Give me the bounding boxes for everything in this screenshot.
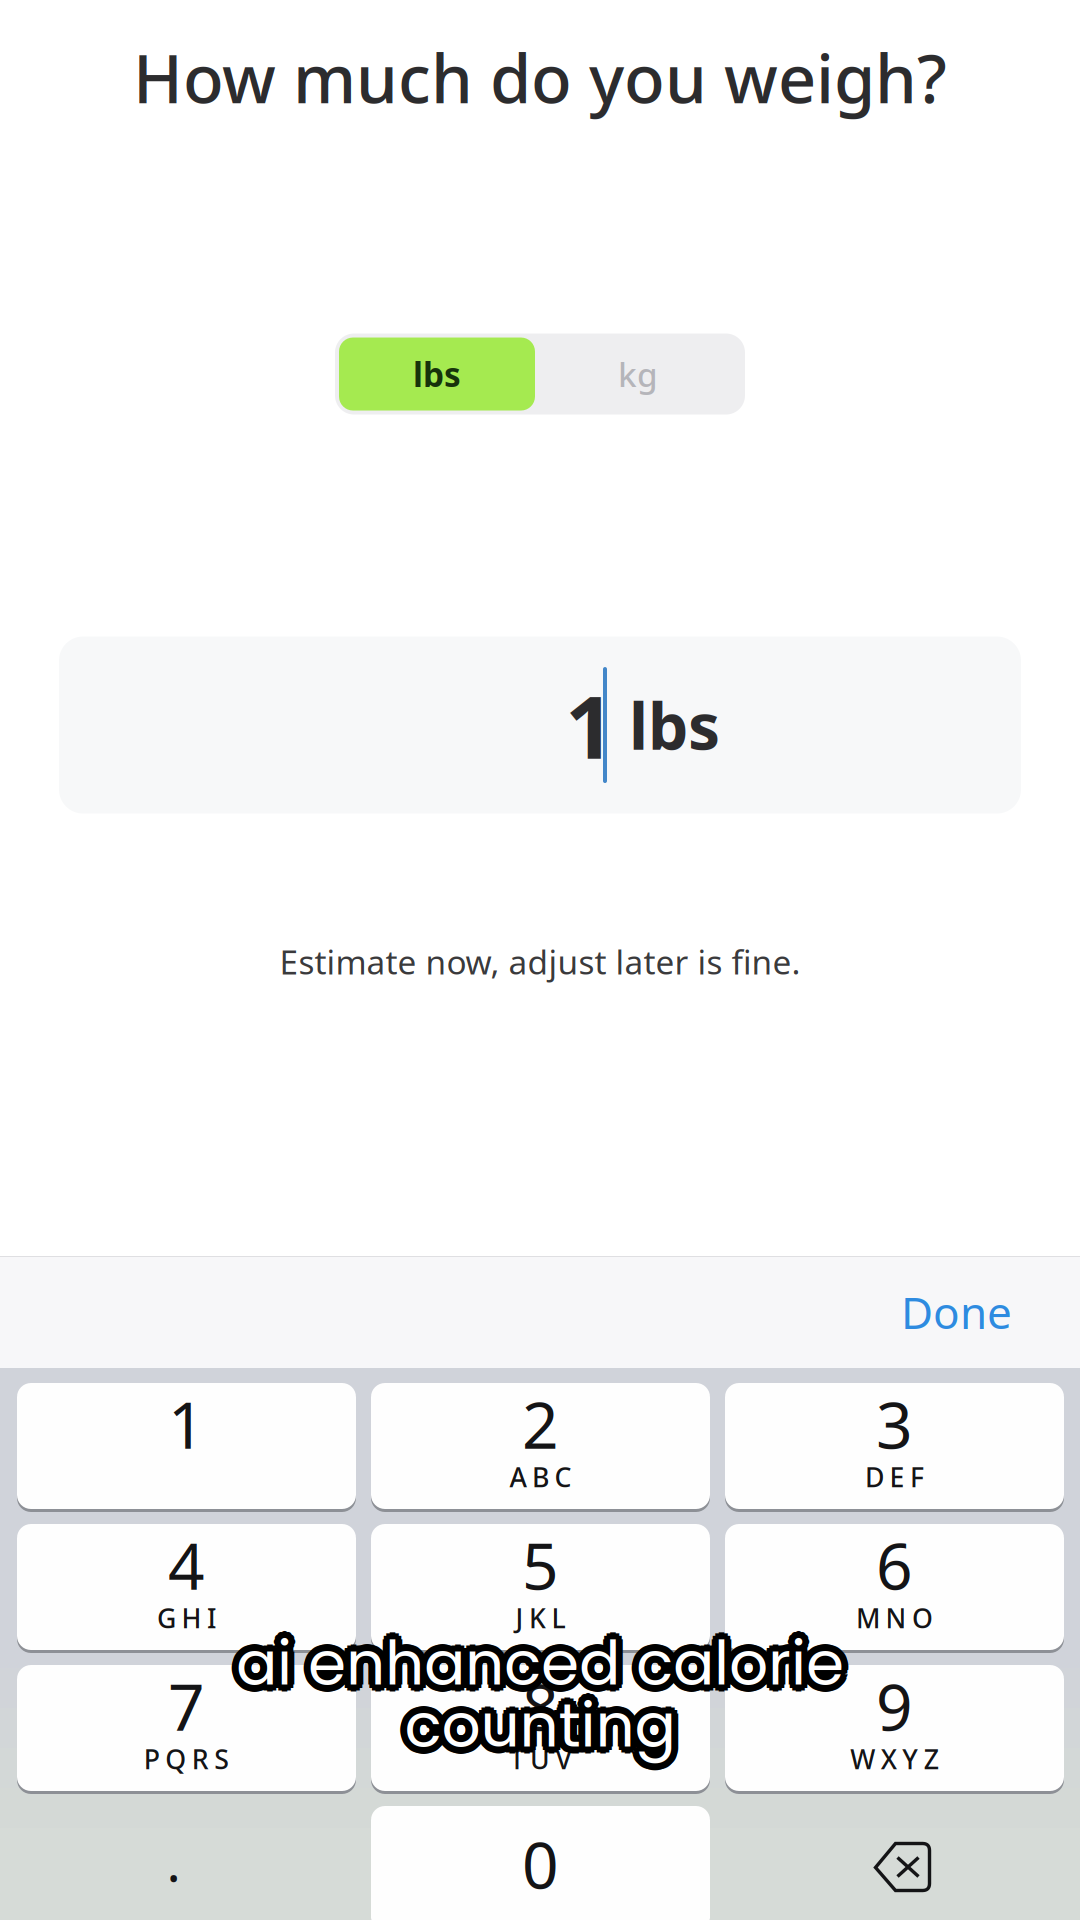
staticText: ai enhanced calorie bbox=[239, 1626, 847, 1712]
staticText: ai enhanced calorie bbox=[232, 1620, 840, 1706]
staticText: lbs bbox=[413, 352, 461, 396]
staticText: 7 bbox=[168, 1663, 205, 1748]
staticText: ai enhanced calorie bbox=[236, 1624, 844, 1709]
staticText: counting bbox=[398, 1679, 669, 1764]
button[interactable]: Decimal point bbox=[17, 1806, 356, 1920]
staticText: lbs bbox=[629, 682, 720, 767]
staticText: kg bbox=[618, 352, 658, 396]
staticText: ai enhanced calorie bbox=[236, 1620, 844, 1706]
staticText: DEF bbox=[865, 1459, 924, 1495]
button[interactable]: 7 bbox=[17, 1665, 356, 1791]
staticText: counting bbox=[411, 1679, 682, 1764]
staticText: counting bbox=[404, 1679, 675, 1764]
staticText: ai enhanced calorie bbox=[229, 1620, 837, 1706]
staticText: counting bbox=[406, 1685, 677, 1771]
staticText: counting bbox=[407, 1684, 678, 1770]
staticText: ai enhanced calorie bbox=[243, 1620, 851, 1706]
button[interactable]: 1 bbox=[17, 1383, 356, 1509]
staticText: 2 bbox=[522, 1381, 559, 1466]
staticText: ai enhanced calorie bbox=[238, 1623, 846, 1709]
staticText: counting bbox=[397, 1682, 668, 1768]
staticText: counting bbox=[401, 1680, 672, 1766]
staticText: ai enhanced calorie bbox=[239, 1620, 847, 1706]
staticText: ABC bbox=[509, 1459, 571, 1495]
button[interactable]: kg bbox=[535, 337, 741, 410]
staticText: ai enhanced calorie bbox=[239, 1618, 847, 1704]
staticText: MNO bbox=[856, 1600, 933, 1636]
button[interactable]: 9 bbox=[725, 1665, 1064, 1791]
staticText: ai enhanced calorie bbox=[236, 1613, 844, 1699]
button[interactable]: lbs bbox=[339, 337, 535, 410]
staticText: 0 bbox=[522, 1821, 559, 1906]
button[interactable]: 8 bbox=[371, 1665, 710, 1791]
staticText: ai enhanced calorie bbox=[242, 1617, 850, 1702]
staticText: How much do you weigh? bbox=[133, 33, 947, 121]
staticText: counting bbox=[408, 1688, 679, 1774]
staticText: counting bbox=[404, 1675, 675, 1761]
staticText: counting bbox=[401, 1684, 672, 1770]
button[interactable]: 3 bbox=[725, 1383, 1064, 1509]
staticText: ai enhanced calorie bbox=[242, 1624, 850, 1709]
staticText: . bbox=[166, 1826, 180, 1896]
staticText: PQRS bbox=[144, 1741, 229, 1777]
staticText: Estimate now, adjust later is fine. bbox=[279, 939, 800, 984]
staticText: ai enhanced calorie bbox=[236, 1627, 844, 1713]
button[interactable]: 5 bbox=[371, 1524, 710, 1650]
staticText: TUV bbox=[509, 1741, 571, 1777]
staticText: counting bbox=[406, 1679, 677, 1765]
staticText: ai enhanced calorie bbox=[230, 1624, 838, 1709]
staticText: ai enhanced calorie bbox=[238, 1617, 846, 1703]
staticText: counting bbox=[403, 1685, 674, 1771]
staticText: 8 bbox=[522, 1663, 559, 1748]
button[interactable]: 2 bbox=[371, 1383, 710, 1509]
staticText: 5 bbox=[522, 1522, 559, 1607]
staticText: ai enhanced calorie bbox=[239, 1622, 847, 1708]
staticText: ai enhanced calorie bbox=[233, 1622, 841, 1708]
button[interactable]: 4 bbox=[17, 1524, 356, 1650]
staticText: ai enhanced calorie bbox=[236, 1617, 844, 1702]
staticText: Done bbox=[901, 1283, 1012, 1341]
staticText: WXYZ bbox=[850, 1741, 939, 1777]
staticText: counting bbox=[404, 1682, 675, 1768]
staticText: counting bbox=[404, 1689, 675, 1775]
staticText: counting bbox=[401, 1688, 672, 1774]
staticText: counting bbox=[411, 1686, 682, 1771]
staticText: ai enhanced calorie bbox=[233, 1618, 841, 1704]
staticText: counting bbox=[403, 1679, 674, 1765]
staticText: ai enhanced calorie bbox=[239, 1614, 847, 1700]
staticText: GHI bbox=[157, 1600, 216, 1636]
staticText: ai enhanced calorie bbox=[234, 1617, 842, 1703]
staticText: 1 bbox=[565, 667, 615, 783]
button[interactable]: Delete bbox=[725, 1806, 1064, 1920]
button[interactable]: 0 bbox=[371, 1806, 710, 1920]
staticText: counting bbox=[401, 1682, 672, 1768]
staticText: ai enhanced calorie bbox=[232, 1626, 840, 1712]
staticText: ai enhanced calorie bbox=[230, 1617, 838, 1702]
staticText: counting bbox=[401, 1676, 672, 1762]
staticText: counting bbox=[411, 1682, 682, 1768]
staticText: JKL bbox=[515, 1600, 565, 1636]
staticText: counting bbox=[398, 1686, 669, 1771]
staticText: counting bbox=[404, 1686, 675, 1771]
staticText: ai enhanced calorie bbox=[234, 1623, 842, 1709]
staticText: 9 bbox=[876, 1663, 913, 1748]
staticText: 6 bbox=[876, 1522, 913, 1607]
staticText: counting bbox=[407, 1680, 678, 1766]
staticText: counting bbox=[408, 1676, 679, 1762]
staticText: 4 bbox=[168, 1522, 205, 1607]
staticText: counting bbox=[408, 1682, 679, 1768]
button[interactable]: 6 bbox=[725, 1524, 1064, 1650]
staticText: 1 bbox=[168, 1381, 205, 1466]
staticText: 3 bbox=[876, 1381, 913, 1466]
button[interactable]: Done bbox=[865, 1259, 1080, 1365]
staticText: ai enhanced calorie bbox=[232, 1614, 840, 1700]
